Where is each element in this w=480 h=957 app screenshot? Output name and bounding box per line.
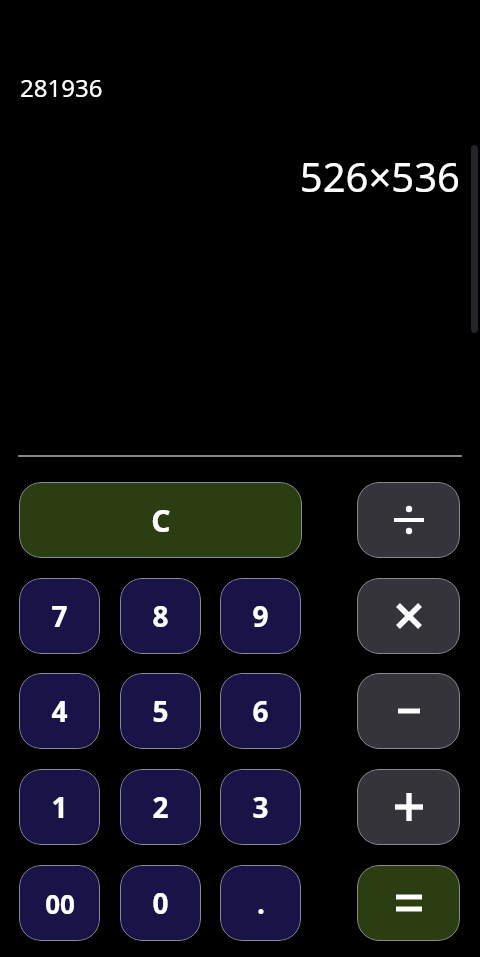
staticText: 4	[51, 692, 68, 730]
staticText: 7	[51, 597, 68, 635]
button[interactable]: 0	[120, 865, 201, 941]
staticText: 281936	[20, 71, 103, 104]
staticText: 3	[252, 788, 269, 826]
button[interactable]: 2	[120, 769, 201, 845]
staticText: .	[257, 884, 265, 922]
button[interactable]: Divide	[357, 482, 460, 558]
button[interactable]: Multiply	[357, 578, 460, 654]
button[interactable]: 7	[19, 578, 100, 654]
button[interactable]: .	[220, 865, 301, 941]
staticText: 526×536	[299, 149, 460, 203]
button[interactable]: 6	[220, 673, 301, 749]
staticText: 5	[152, 692, 169, 730]
button[interactable]: Equals	[357, 865, 460, 941]
button[interactable]: 1	[19, 769, 100, 845]
button[interactable]: Add	[357, 769, 460, 845]
staticText: 6	[252, 692, 269, 730]
staticText: 8	[152, 597, 169, 635]
button[interactable]: 8	[120, 578, 201, 654]
staticText: 00	[45, 886, 75, 921]
button[interactable]: 4	[19, 673, 100, 749]
button[interactable]: 9	[220, 578, 301, 654]
staticText: 0	[152, 884, 169, 922]
staticText: 1	[51, 788, 68, 826]
button[interactable]: 00	[19, 865, 100, 941]
button[interactable]: C	[19, 482, 302, 558]
staticText: C	[151, 500, 171, 541]
button[interactable]: Subtract	[357, 673, 460, 749]
button[interactable]: 5	[120, 673, 201, 749]
staticText: 2	[152, 788, 169, 826]
button[interactable]: 3	[220, 769, 301, 845]
staticText: 9	[252, 597, 269, 635]
